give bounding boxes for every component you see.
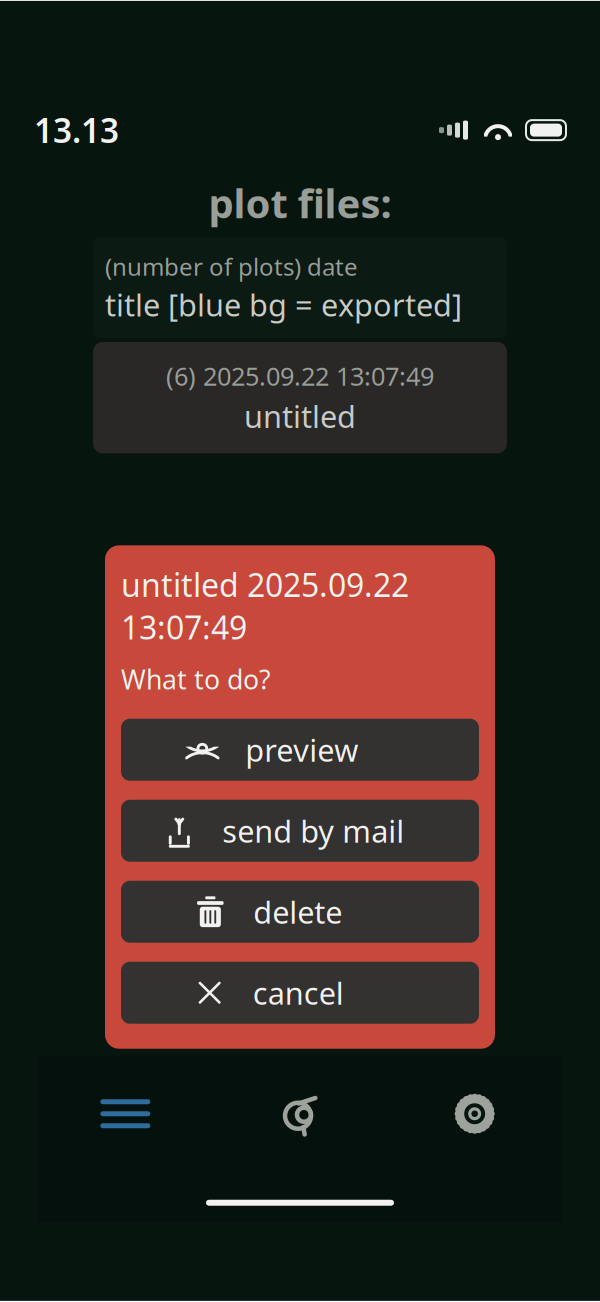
button[interactable]: (6) 2025.09.22 13:07:49	[93, 342, 507, 453]
staticText: title [blue bg = exported]	[105, 284, 462, 325]
staticText: plot files:	[208, 176, 391, 229]
button[interactable]: cancel	[121, 962, 479, 1024]
button[interactable]: send by mail	[121, 800, 479, 862]
staticText: (6) 2025.09.22 13:07:49	[166, 359, 434, 393]
button[interactable]: preview	[121, 719, 479, 781]
staticText: delete	[253, 891, 342, 932]
staticText: untitled 2025.09.22 13:07:49	[121, 563, 409, 648]
button[interactable]: Plot files	[38, 1075, 213, 1153]
staticText: 13.13	[34, 108, 119, 152]
button[interactable]: delete	[121, 881, 479, 943]
staticText: (number of plots) date	[105, 250, 358, 282]
button[interactable]: Draw	[213, 1075, 387, 1153]
staticText: What to do?	[121, 661, 271, 697]
staticText: cancel	[253, 972, 344, 1013]
staticText: untitled	[244, 396, 356, 436]
staticText: preview	[245, 729, 358, 770]
button[interactable]: Settings	[387, 1075, 562, 1153]
staticText: send by mail	[222, 810, 404, 851]
